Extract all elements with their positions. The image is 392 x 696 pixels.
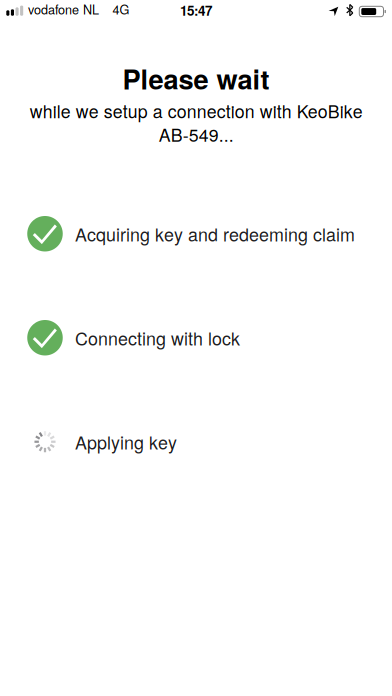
staticText: 4G bbox=[113, 0, 130, 18]
staticText: vodafone NL bbox=[28, 0, 99, 18]
staticText: 15:47 bbox=[180, 0, 212, 20]
staticText: while we setup a connection with KeoBike… bbox=[29, 98, 362, 147]
staticText: Connecting with lock bbox=[75, 325, 240, 350]
staticText: Acquiring key and redeeming claim bbox=[75, 221, 355, 246]
staticText: Please wait bbox=[122, 59, 269, 98]
staticText: Applying key bbox=[75, 429, 177, 454]
